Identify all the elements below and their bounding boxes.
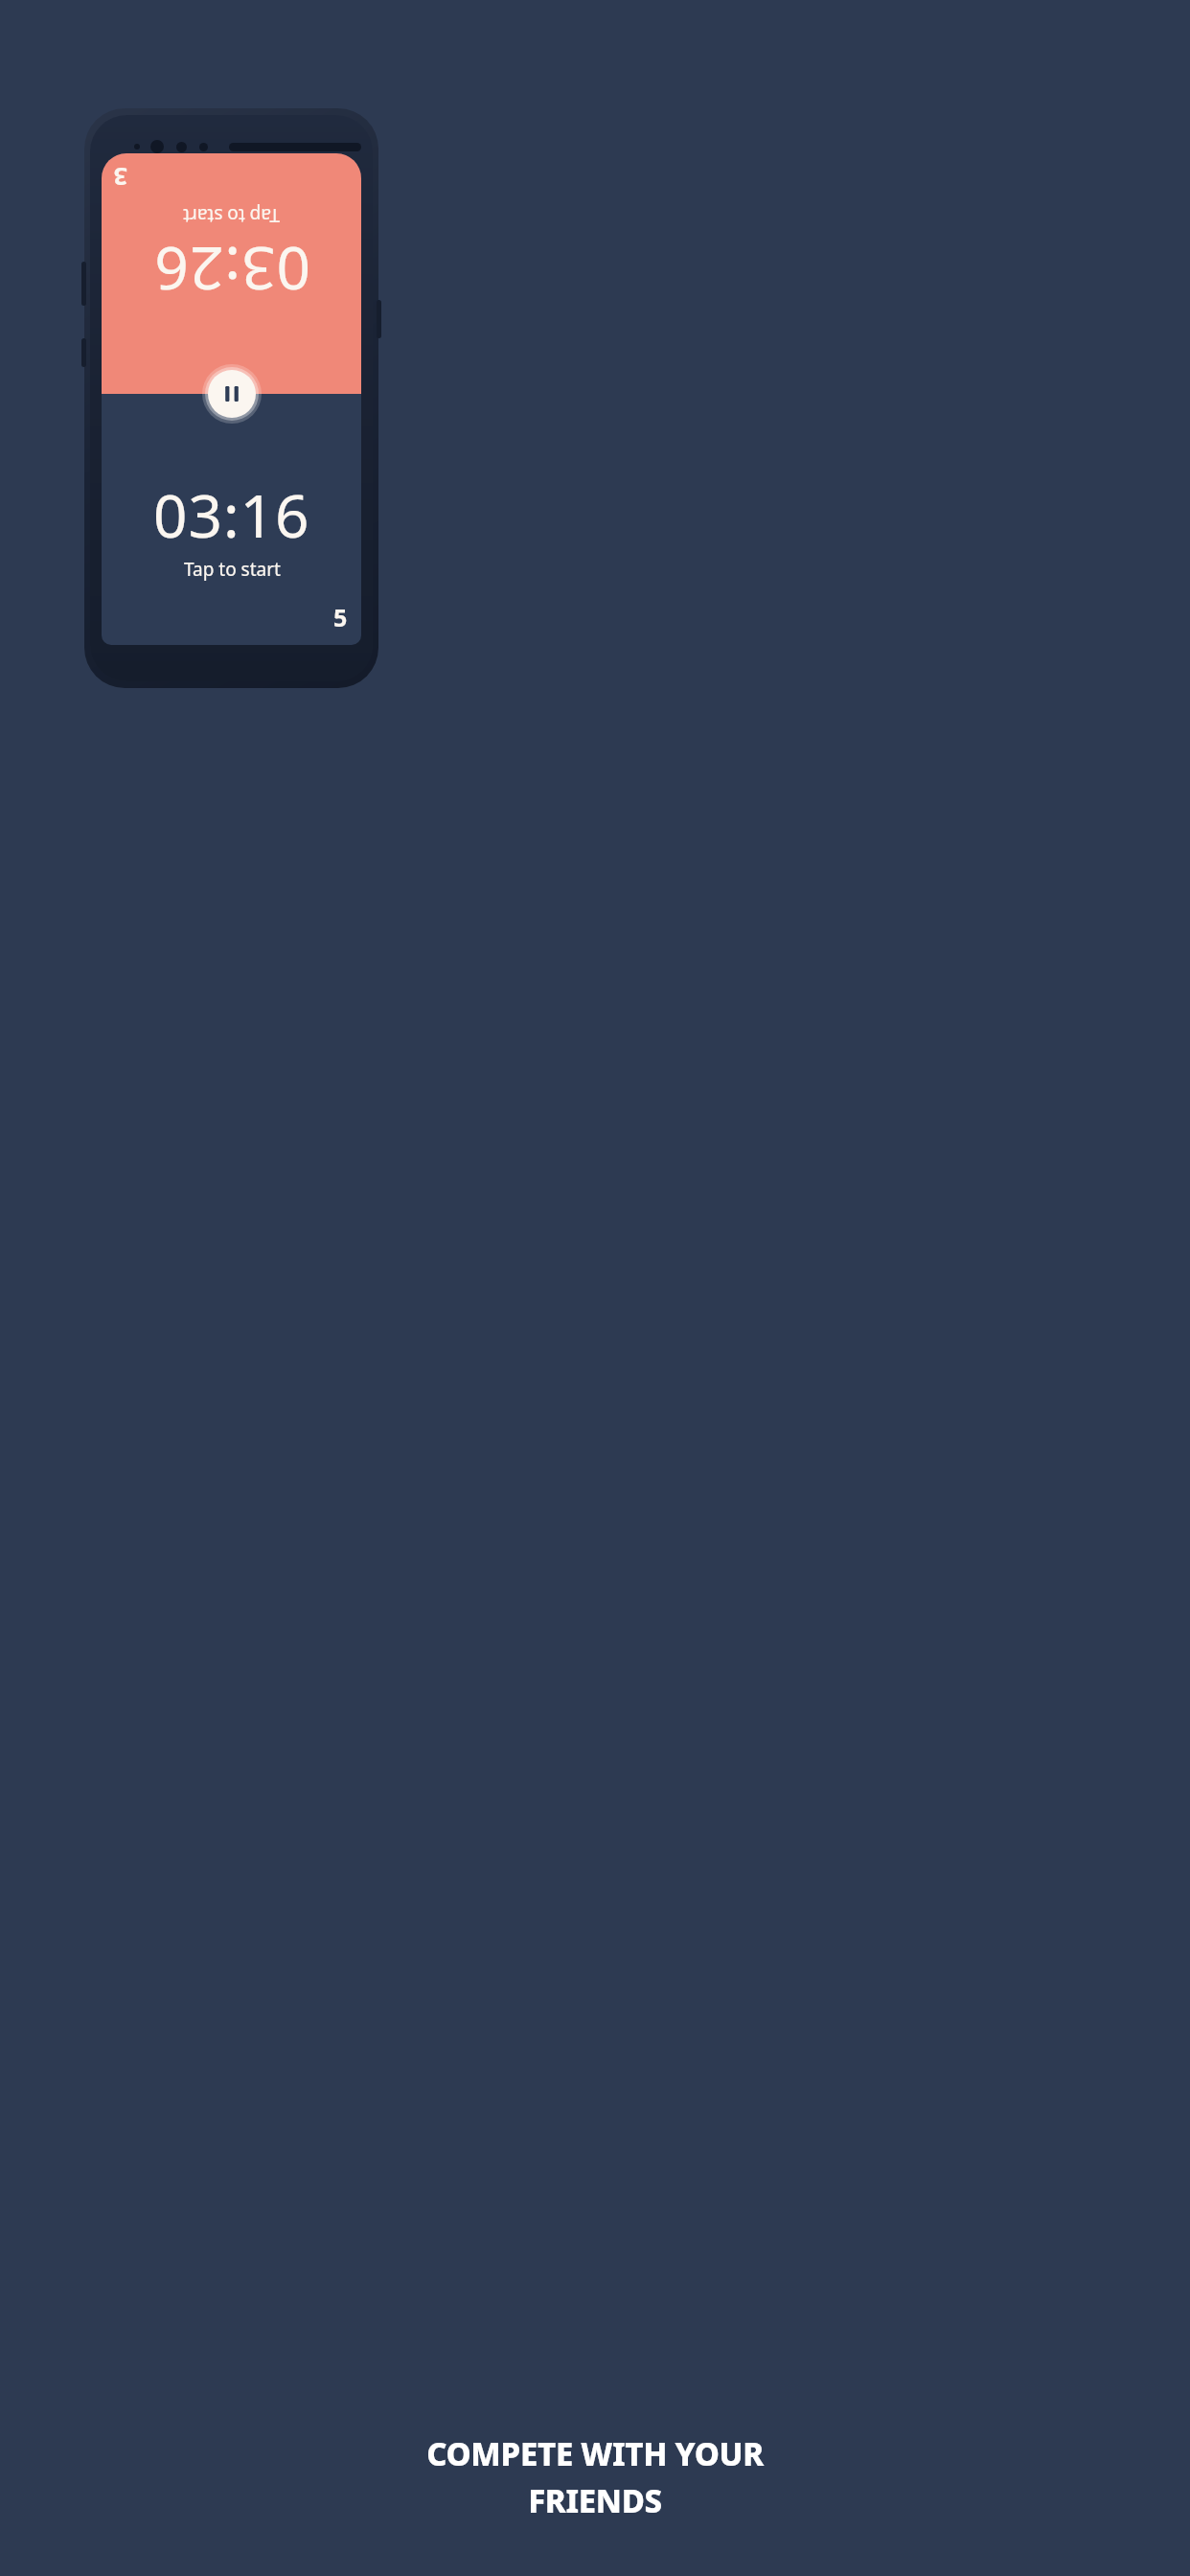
- button[interactable]: Pause: [202, 364, 262, 424]
- staticText: 5: [333, 601, 348, 633]
- button[interactable]: 03:16: [102, 394, 361, 645]
- staticText: 03:16: [153, 474, 310, 555]
- button[interactable]: 3: [102, 153, 361, 394]
- staticText: Tap to start: [183, 203, 280, 228]
- staticText: FRIENDS: [528, 2479, 662, 2522]
- staticText: 03:26: [153, 230, 310, 310]
- staticText: Tap to start: [184, 557, 281, 582]
- staticText: 3: [113, 161, 127, 194]
- staticText: COMPETE WITH YOUR: [426, 2432, 764, 2475]
